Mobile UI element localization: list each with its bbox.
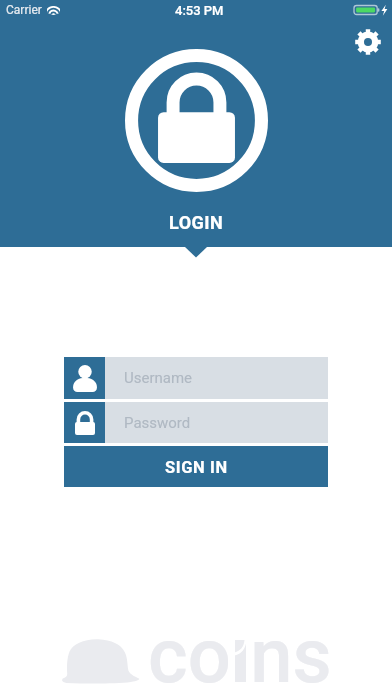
staticText: LOGIN [169, 212, 224, 233]
button[interactable]: Username [64, 357, 328, 399]
staticText: Password [124, 414, 191, 432]
button[interactable]: SIGN IN [64, 446, 328, 487]
button[interactable]: Settings [355, 29, 381, 55]
staticText: Username [124, 369, 193, 387]
staticText: SIGN IN [165, 458, 228, 477]
staticText: coins [148, 611, 332, 696]
staticText: 4:53 PM [175, 3, 224, 18]
button[interactable]: Password [64, 402, 328, 443]
staticText: Carrier [6, 3, 42, 17]
